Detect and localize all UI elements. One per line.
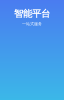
staticText: 智能平台 bbox=[14, 8, 50, 19]
staticText: 一站式服务 bbox=[22, 21, 42, 26]
